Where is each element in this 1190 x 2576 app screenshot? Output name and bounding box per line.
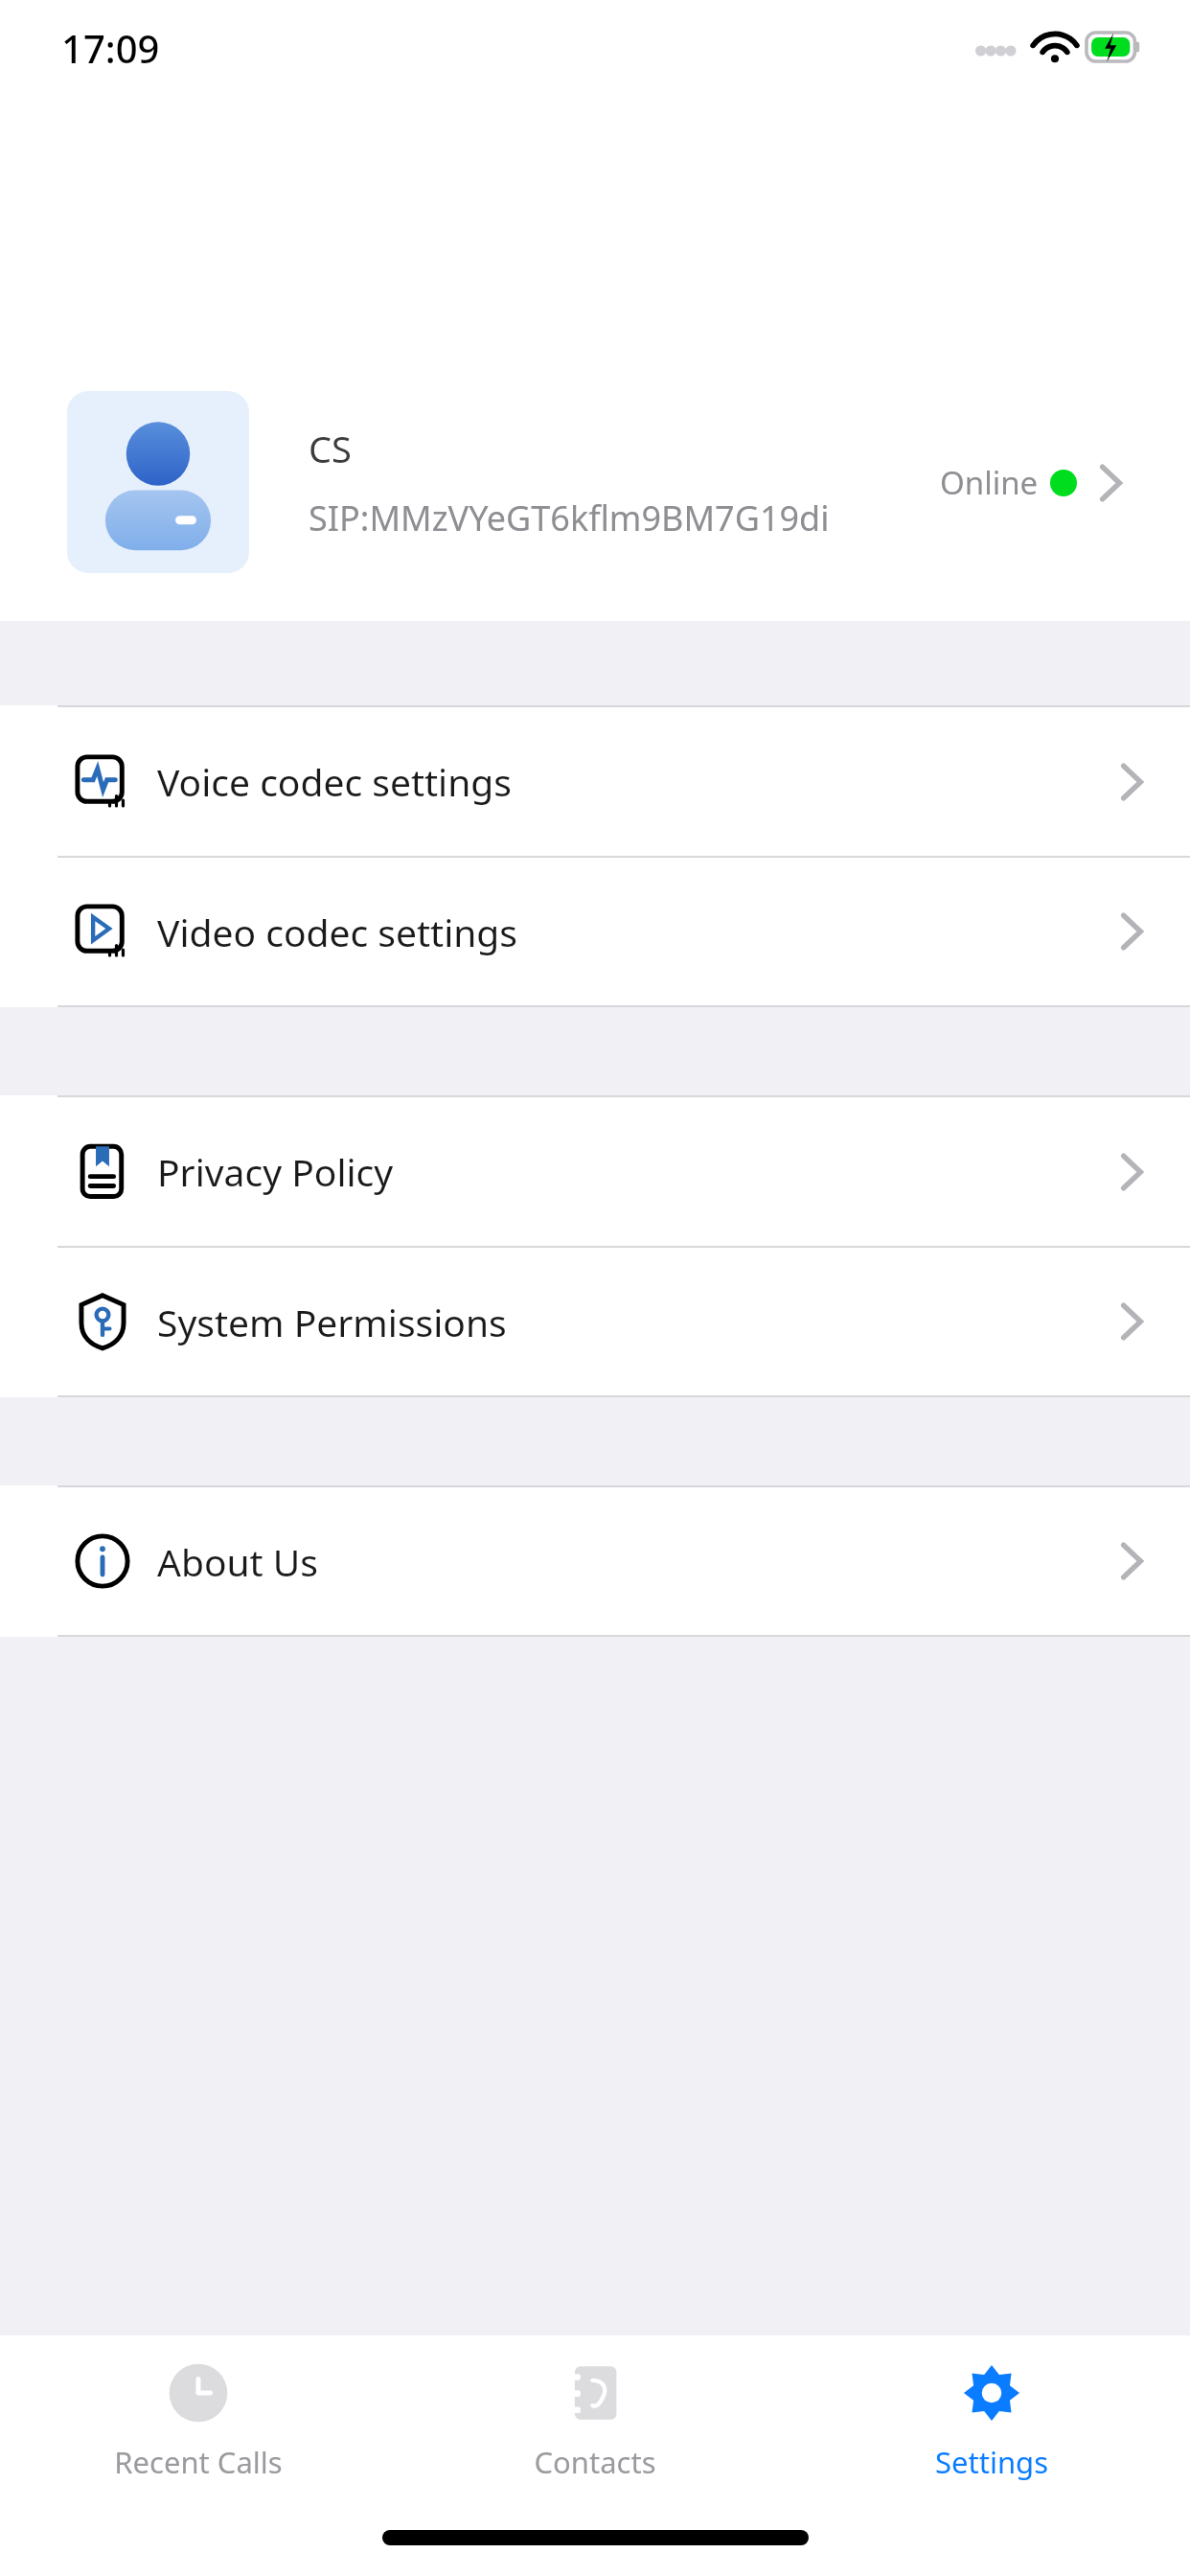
staticText: Settings (935, 2442, 1048, 2482)
staticText: 17:09 (61, 22, 160, 74)
staticText: Privacy Policy (157, 1146, 1119, 1197)
staticText: Contacts (534, 2442, 656, 2482)
staticText: Recent Calls (114, 2442, 283, 2482)
staticText: System Permissions (157, 1297, 1119, 1347)
button[interactable]: Voice codec settings (0, 707, 1190, 856)
button[interactable]: Privacy Policy (0, 1097, 1190, 1246)
button[interactable]: System Permissions (0, 1248, 1190, 1395)
staticText: Voice codec settings (157, 756, 1119, 807)
staticText: Online (940, 461, 1039, 504)
button[interactable]: About Us (0, 1487, 1190, 1635)
staticText: About Us (157, 1536, 1119, 1587)
button[interactable]: Recent Calls (0, 2335, 397, 2508)
staticText: CS (309, 424, 352, 473)
button[interactable]: Settings (793, 2335, 1190, 2508)
button[interactable]: Contacts (397, 2335, 793, 2508)
staticText: Video codec settings (157, 907, 1119, 957)
staticText: SIP:MMzVYeGT6kflm9BM7G19di (309, 494, 830, 541)
button[interactable]: CS (0, 343, 1190, 621)
button[interactable]: Video codec settings (0, 858, 1190, 1005)
